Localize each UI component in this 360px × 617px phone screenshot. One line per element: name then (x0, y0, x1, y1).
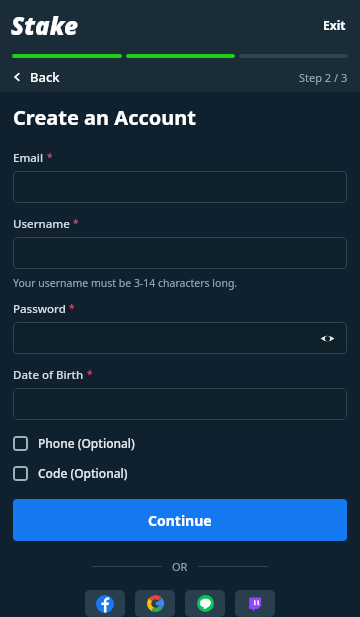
button[interactable] (13, 237, 347, 269)
staticText: * (73, 216, 79, 230)
button[interactable] (13, 171, 347, 203)
button[interactable]: Show password (13, 322, 347, 354)
staticText: Phone (Optional) (38, 435, 135, 451)
button[interactable]: Stake home (11, 9, 78, 42)
button[interactable]: Exit (309, 7, 360, 43)
button[interactable] (13, 388, 347, 420)
staticText: Your username must be 3-14 characters lo… (13, 276, 238, 290)
button[interactable]: Continue (13, 499, 347, 541)
button[interactable]: Code (Optional) (13, 463, 128, 483)
staticText: * (87, 367, 93, 381)
button[interactable]: Phone (Optional) (13, 433, 135, 453)
staticText: Create an Account (13, 104, 196, 131)
staticText: Password (13, 301, 66, 317)
staticText: Code (Optional) (38, 465, 128, 481)
staticText: * (47, 150, 53, 164)
staticText: OR (172, 559, 188, 574)
staticText: Step 2 / 3 (299, 70, 348, 85)
button[interactable]: Sign in with Facebook (85, 590, 125, 617)
staticText: Exit (323, 17, 346, 33)
staticText: Back (30, 68, 60, 86)
button[interactable]: Sign in with Twitch (235, 590, 275, 617)
staticText: * (69, 301, 75, 315)
button[interactable]: Show password (317, 328, 337, 348)
staticText: Email (13, 150, 44, 166)
button[interactable]: Back (0, 64, 72, 90)
staticText: Date of Birth (13, 367, 84, 383)
staticText: Username (13, 216, 70, 232)
button[interactable]: Sign in with Google (135, 590, 175, 617)
staticText: Continue (148, 511, 212, 530)
button[interactable]: Sign in with Line (185, 590, 225, 617)
staticText: Stake (11, 9, 78, 42)
